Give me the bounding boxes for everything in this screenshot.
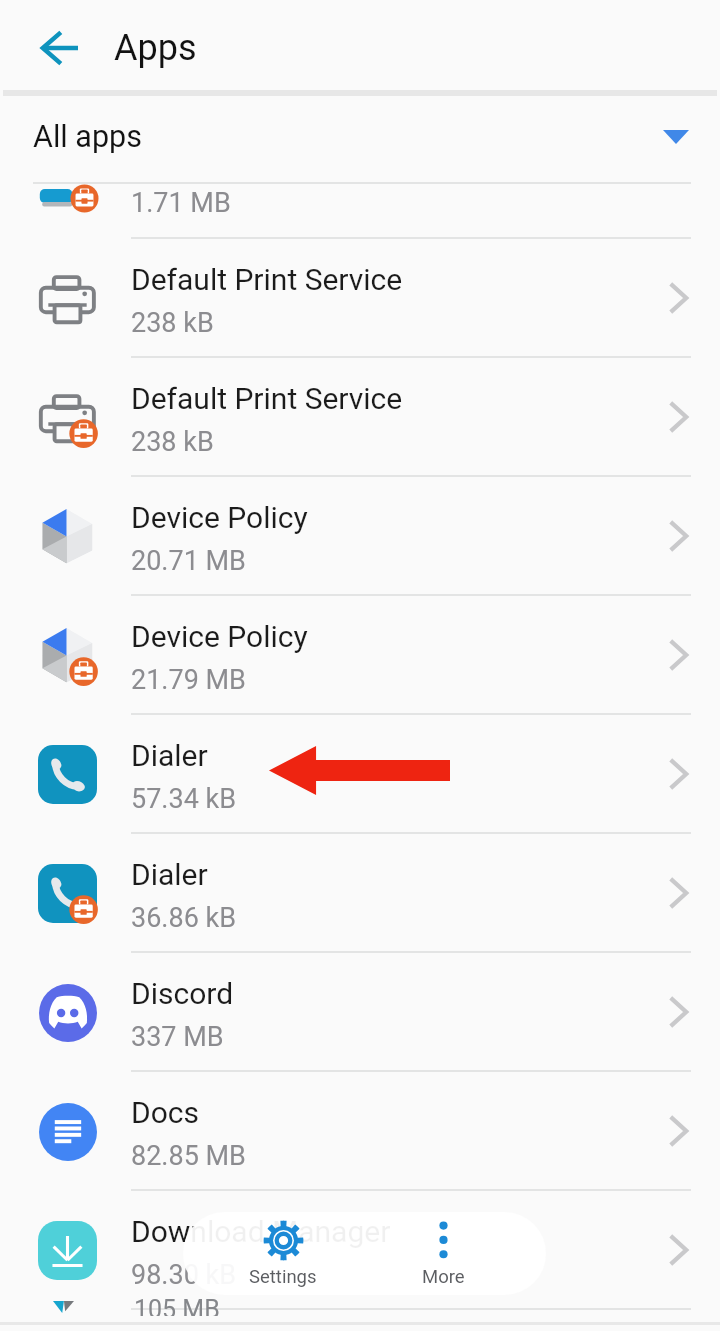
other: Open app info — [670, 1116, 688, 1146]
other: Open app info — [670, 878, 688, 908]
staticText: 21.79 MB — [131, 664, 246, 696]
button[interactable]: Dialer — [0, 715, 720, 834]
staticText: 98.30 kB — [131, 1259, 237, 1291]
staticText: Device Policy — [131, 619, 651, 654]
button[interactable]: Docs — [0, 1072, 720, 1191]
staticText: Device Policy — [131, 500, 651, 535]
other: Open app info — [670, 521, 688, 551]
staticText: 82.85 MB — [131, 1140, 246, 1172]
other: Open app info — [670, 402, 688, 432]
button[interactable]: More — [343, 1212, 543, 1295]
staticText: Default Print Service — [131, 262, 651, 297]
staticText: Docs — [131, 1095, 651, 1130]
staticText: Default Print Service — [131, 381, 651, 416]
staticText: 238 kB — [131, 307, 214, 339]
other: Open app info — [670, 283, 688, 313]
staticText: Download Manager — [131, 1214, 651, 1249]
staticText: Dialer — [131, 857, 651, 892]
button[interactable]: Dialer — [0, 834, 720, 953]
staticText: 238 kB — [131, 426, 214, 458]
button[interactable]: Back — [26, 12, 98, 84]
staticText: 36.86 kB — [131, 902, 237, 934]
staticText: 20.71 MB — [131, 545, 246, 577]
staticText: 337 MB — [131, 1021, 224, 1053]
button[interactable]: Device Policy — [0, 477, 720, 596]
staticText: Settings — [249, 1266, 317, 1288]
button[interactable]: Discord — [0, 953, 720, 1072]
button[interactable]: Default Print Service — [0, 358, 720, 477]
staticText: Discord — [131, 976, 651, 1011]
staticText: More — [422, 1266, 465, 1288]
other: Open app info — [670, 759, 688, 789]
button[interactable]: Settings — [183, 1212, 383, 1295]
staticText: Apps — [114, 27, 197, 69]
other: Open app info — [670, 997, 688, 1027]
other: Open app info — [670, 1235, 688, 1265]
staticText: 105 MB — [134, 1295, 220, 1316]
button[interactable]: Download Manager — [0, 1191, 720, 1310]
staticText: All apps — [33, 119, 142, 155]
button[interactable]: Default Print Service — [0, 239, 720, 358]
button[interactable]: 105 MB — [0, 1296, 720, 1317]
staticText: 57.34 kB — [131, 783, 237, 815]
staticText: 1.71 MB — [131, 187, 231, 219]
button[interactable]: Device Policy — [0, 596, 720, 715]
button[interactable]: All apps — [0, 96, 720, 184]
button[interactable]: 1.71 MB — [0, 186, 720, 239]
staticText: Dialer — [131, 738, 651, 773]
other: Open app info — [670, 640, 688, 670]
